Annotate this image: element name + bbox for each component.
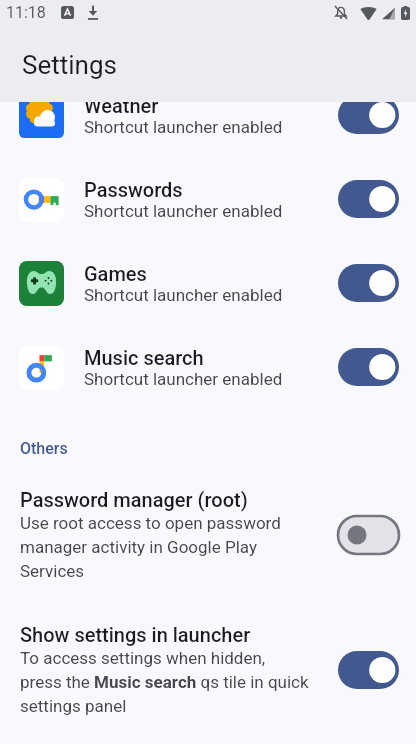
staticText: Shortcut launcher enabled — [84, 285, 283, 305]
button[interactable]: Games — [0, 241, 416, 325]
button[interactable]: Enabled toggle — [338, 180, 399, 218]
button[interactable]: Enabled toggle — [338, 651, 399, 689]
button[interactable]: Weather — [0, 73, 416, 157]
staticText: Show settings in launcher — [20, 623, 251, 646]
staticText: Weather — [84, 94, 159, 117]
button[interactable]: Enabled toggle — [338, 96, 399, 134]
staticText: Shortcut launcher enabled — [84, 201, 283, 221]
staticText: Password manager (root) — [20, 488, 248, 511]
button[interactable]: Disabled toggle — [338, 516, 399, 554]
button[interactable]: Enabled toggle — [338, 264, 399, 302]
staticText: Passwords — [84, 178, 183, 201]
staticText: Settings — [22, 50, 117, 80]
staticText: Shortcut launcher enabled — [84, 117, 283, 137]
button[interactable]: Enabled toggle — [338, 348, 399, 386]
staticText: Use root access to open password manager… — [20, 513, 281, 581]
other: Notifications silenced — [333, 5, 349, 21]
staticText: Shortcut launcher enabled — [84, 369, 283, 389]
staticText: To access settings when hidden, press th… — [20, 648, 309, 716]
button[interactable]: Passwords — [0, 157, 416, 241]
button[interactable]: Password manager (root) — [0, 488, 416, 581]
staticText: 11:18 — [6, 3, 46, 22]
staticText: Music search — [84, 346, 204, 369]
button[interactable]: Show settings in launcher — [0, 623, 416, 716]
staticText: Games — [84, 262, 147, 285]
staticText: Others — [20, 439, 68, 458]
button[interactable]: Music search — [0, 325, 416, 409]
